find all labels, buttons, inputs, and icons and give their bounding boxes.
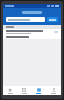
button[interactable]: Library [31, 86, 46, 95]
button[interactable]: Profile [46, 86, 61, 95]
button[interactable] [6, 17, 45, 22]
button[interactable]: Search [47, 17, 58, 22]
button[interactable] [3, 8, 61, 17]
button[interactable]: Home [3, 86, 17, 95]
button[interactable] [3, 35, 61, 39]
button[interactable] [3, 29, 61, 35]
button[interactable]: Explore [17, 86, 31, 95]
